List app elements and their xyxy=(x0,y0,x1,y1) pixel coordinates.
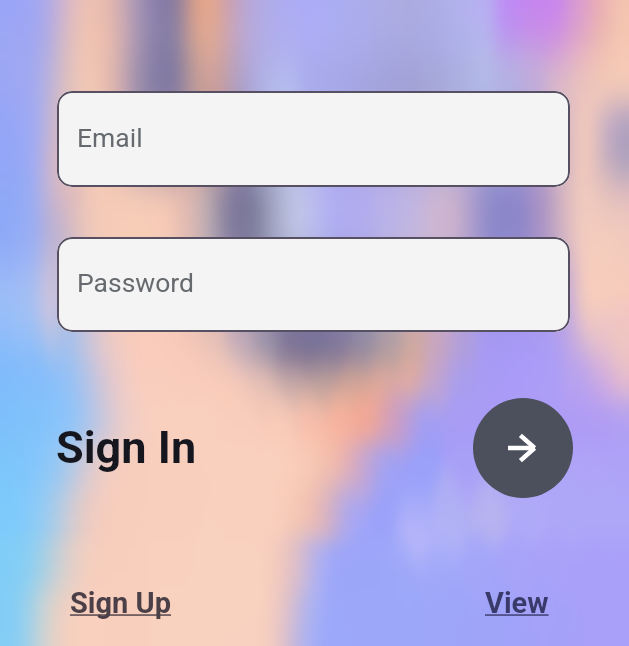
button[interactable]: Sign in xyxy=(473,398,573,498)
staticText: Password xyxy=(77,267,195,298)
button[interactable]: Password xyxy=(57,237,570,332)
staticText: Email xyxy=(77,122,143,153)
button[interactable]: View xyxy=(485,586,549,620)
button[interactable]: Sign Up xyxy=(70,586,171,620)
button[interactable]: Email xyxy=(57,91,570,187)
button[interactable]: Sign In xyxy=(56,421,197,474)
